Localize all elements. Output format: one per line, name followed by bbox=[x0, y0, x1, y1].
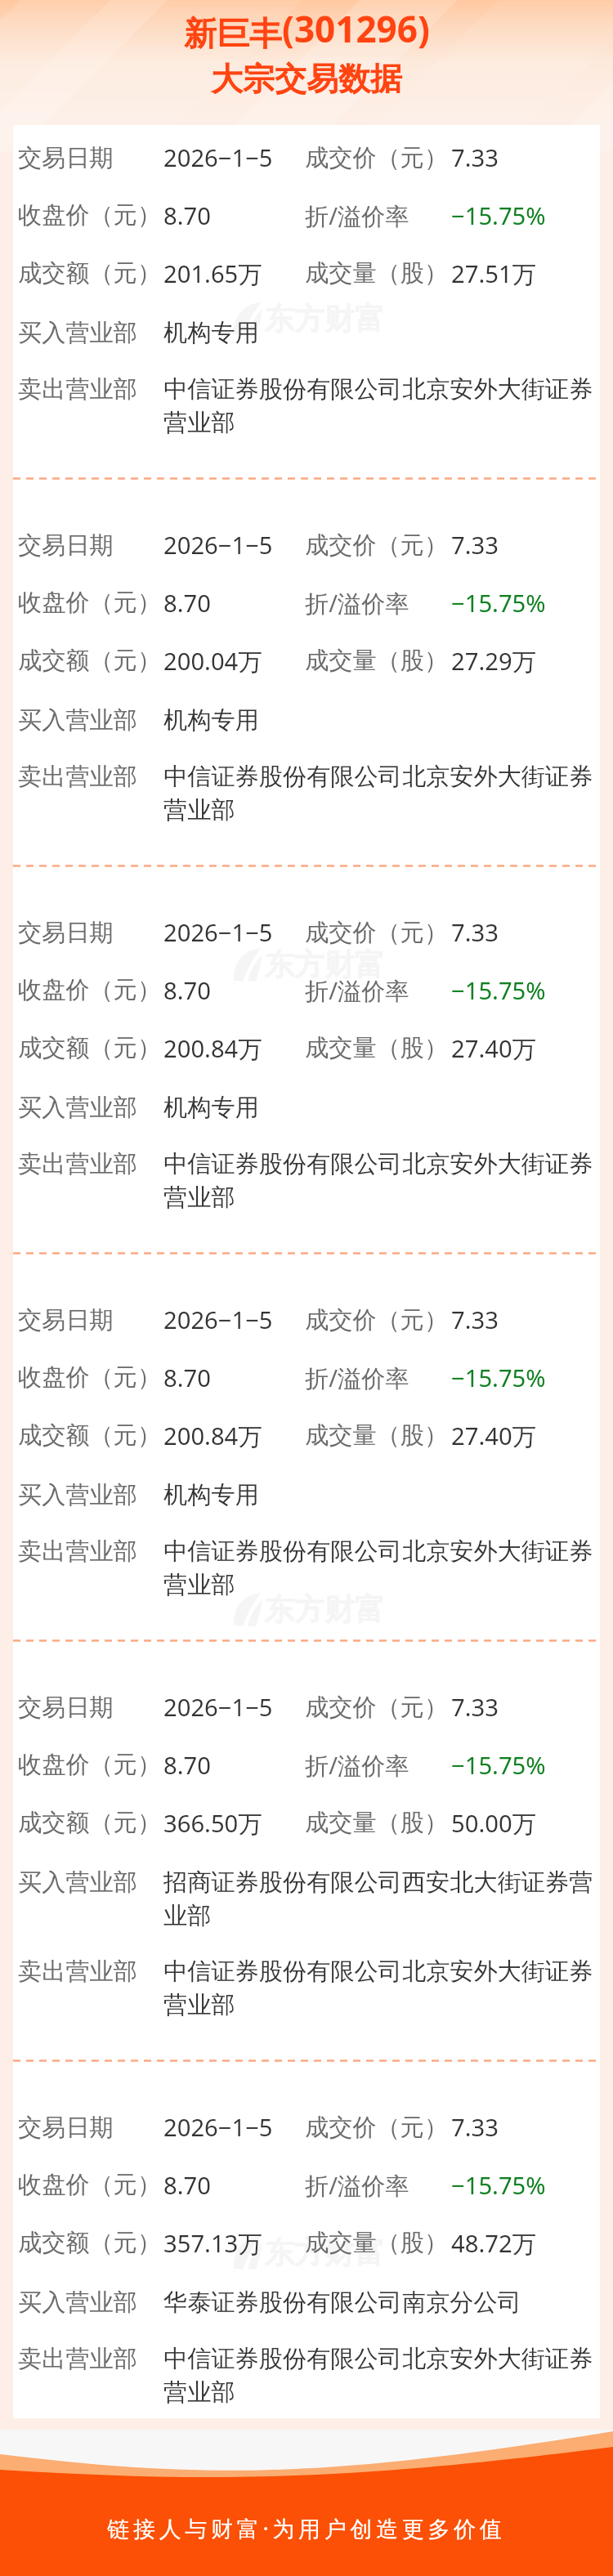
staticText: 8.70 bbox=[163, 2169, 211, 2202]
staticText: 2026−1−5 bbox=[163, 1691, 273, 1724]
staticText: (301296) bbox=[282, 4, 430, 53]
staticText: 折/溢价率 bbox=[305, 974, 409, 1007]
staticText: 大宗交易数据 bbox=[0, 59, 613, 99]
staticText: 27.40万 bbox=[451, 1032, 536, 1065]
staticText: −15.75% bbox=[451, 199, 546, 232]
staticText: 机构专用 bbox=[163, 705, 593, 736]
staticText: −15.75% bbox=[451, 587, 546, 619]
staticText: 交易日期 bbox=[18, 2113, 114, 2143]
staticText: 交易日期 bbox=[18, 918, 114, 948]
staticText: 卖出营业部 bbox=[18, 762, 137, 792]
staticText: 201.65万 bbox=[163, 257, 262, 290]
staticText: 成交量（股） bbox=[305, 1808, 449, 1838]
staticText: 交易日期 bbox=[18, 1305, 114, 1335]
staticText: 买入营业部 bbox=[18, 1093, 137, 1123]
staticText: 8.70 bbox=[163, 1749, 211, 1782]
staticText: 中信证券股份有限公司北京安外大街证券营业部 bbox=[163, 374, 593, 437]
staticText: 27.51万 bbox=[451, 257, 536, 290]
staticText: 8.70 bbox=[163, 1362, 211, 1394]
staticText: 中信证券股份有限公司北京安外大街证券营业部 bbox=[163, 1957, 593, 2019]
staticText: 收盘价（元） bbox=[18, 1750, 162, 1780]
staticText: 买入营业部 bbox=[18, 318, 137, 348]
staticText: 2026−1−5 bbox=[163, 1304, 273, 1336]
staticText: 成交价（元） bbox=[305, 1693, 449, 1723]
staticText: 200.84万 bbox=[163, 1420, 262, 1452]
staticText: 买入营业部 bbox=[18, 1480, 137, 1510]
staticText: 东方财富 bbox=[264, 300, 385, 338]
staticText: 收盘价（元） bbox=[18, 200, 162, 230]
staticText: 机构专用 bbox=[163, 1093, 593, 1123]
staticText: 成交额（元） bbox=[18, 2228, 162, 2258]
staticText: 357.13万 bbox=[163, 2227, 262, 2260]
staticText: 成交量（股） bbox=[305, 646, 449, 676]
staticText: 东方财富 bbox=[264, 2234, 385, 2272]
staticText: 成交量（股） bbox=[305, 258, 449, 288]
staticText: 卖出营业部 bbox=[18, 2344, 137, 2374]
staticText: 成交价（元） bbox=[305, 143, 449, 173]
staticText: 买入营业部 bbox=[18, 705, 137, 736]
staticText: 收盘价（元） bbox=[18, 588, 162, 618]
staticText: 中信证券股份有限公司北京安外大街证券营业部 bbox=[163, 1149, 593, 1212]
staticText: 卖出营业部 bbox=[18, 1149, 137, 1179]
staticText: 链接人与财富·为用户创造更多价值 bbox=[0, 2513, 613, 2543]
staticText: 成交额（元） bbox=[18, 258, 162, 288]
staticText: 2026−1−5 bbox=[163, 916, 273, 949]
staticText: 200.04万 bbox=[163, 645, 262, 678]
staticText: 成交额（元） bbox=[18, 1033, 162, 1063]
staticText: 成交额（元） bbox=[18, 646, 162, 676]
staticText: 折/溢价率 bbox=[305, 587, 409, 619]
staticText: 成交额（元） bbox=[18, 1420, 162, 1451]
staticText: 买入营业部 bbox=[18, 2288, 137, 2318]
staticText: 7.33 bbox=[451, 141, 499, 174]
staticText: 卖出营业部 bbox=[18, 1536, 137, 1567]
staticText: 华泰证券股份有限公司南京分公司 bbox=[163, 2288, 593, 2318]
staticText: 7.33 bbox=[451, 2111, 499, 2144]
staticText: 卖出营业部 bbox=[18, 374, 137, 405]
staticText: 买入营业部 bbox=[18, 1867, 137, 1898]
staticText: 成交价（元） bbox=[305, 918, 449, 948]
staticText: −15.75% bbox=[451, 2169, 546, 2202]
staticText: 27.40万 bbox=[451, 1420, 536, 1452]
staticText: 卖出营业部 bbox=[18, 1957, 137, 1987]
staticText: 机构专用 bbox=[163, 1480, 593, 1510]
staticText: 成交量（股） bbox=[305, 1420, 449, 1451]
staticText: 折/溢价率 bbox=[305, 2169, 409, 2202]
staticText: 收盘价（元） bbox=[18, 2170, 162, 2200]
staticText: 东方财富 bbox=[264, 946, 385, 984]
staticText: 成交价（元） bbox=[305, 1305, 449, 1335]
staticText: 收盘价（元） bbox=[18, 975, 162, 1005]
staticText: 成交量（股） bbox=[305, 2228, 449, 2258]
staticText: 成交价（元） bbox=[305, 530, 449, 561]
staticText: 折/溢价率 bbox=[305, 199, 409, 232]
staticText: 折/溢价率 bbox=[305, 1362, 409, 1394]
staticText: 交易日期 bbox=[18, 1693, 114, 1723]
staticText: 8.70 bbox=[163, 199, 211, 232]
staticText: 8.70 bbox=[163, 587, 211, 619]
staticText: 交易日期 bbox=[18, 530, 114, 561]
staticText: 中信证券股份有限公司北京安外大街证券营业部 bbox=[163, 1536, 593, 1599]
staticText: 2026−1−5 bbox=[163, 529, 273, 561]
staticText: −15.75% bbox=[451, 1362, 546, 1394]
staticText: 7.33 bbox=[451, 916, 499, 949]
staticText: 2026−1−5 bbox=[163, 2111, 273, 2144]
staticText: 2026−1−5 bbox=[163, 141, 273, 174]
staticText: 7.33 bbox=[451, 1304, 499, 1336]
staticText: 8.70 bbox=[163, 974, 211, 1007]
staticText: 东方财富 bbox=[264, 1590, 385, 1629]
staticText: 中信证券股份有限公司北京安外大街证券营业部 bbox=[163, 2344, 593, 2407]
staticText: 成交量（股） bbox=[305, 1033, 449, 1063]
staticText: 交易日期 bbox=[18, 143, 114, 173]
staticText: 新巨丰 bbox=[184, 13, 282, 54]
staticText: 200.84万 bbox=[163, 1032, 262, 1065]
staticText: 366.50万 bbox=[163, 1807, 262, 1840]
staticText: 中信证券股份有限公司北京安外大街证券营业部 bbox=[163, 762, 593, 825]
staticText: 机构专用 bbox=[163, 318, 593, 348]
staticText: 成交额（元） bbox=[18, 1808, 162, 1838]
staticText: 收盘价（元） bbox=[18, 1362, 162, 1393]
staticText: −15.75% bbox=[451, 1749, 546, 1782]
staticText: 成交价（元） bbox=[305, 2113, 449, 2143]
staticText: 48.72万 bbox=[451, 2227, 536, 2260]
staticText: 7.33 bbox=[451, 1691, 499, 1724]
staticText: 招商证券股份有限公司西安北大街证券营业部 bbox=[163, 1867, 593, 1930]
staticText: 7.33 bbox=[451, 529, 499, 561]
